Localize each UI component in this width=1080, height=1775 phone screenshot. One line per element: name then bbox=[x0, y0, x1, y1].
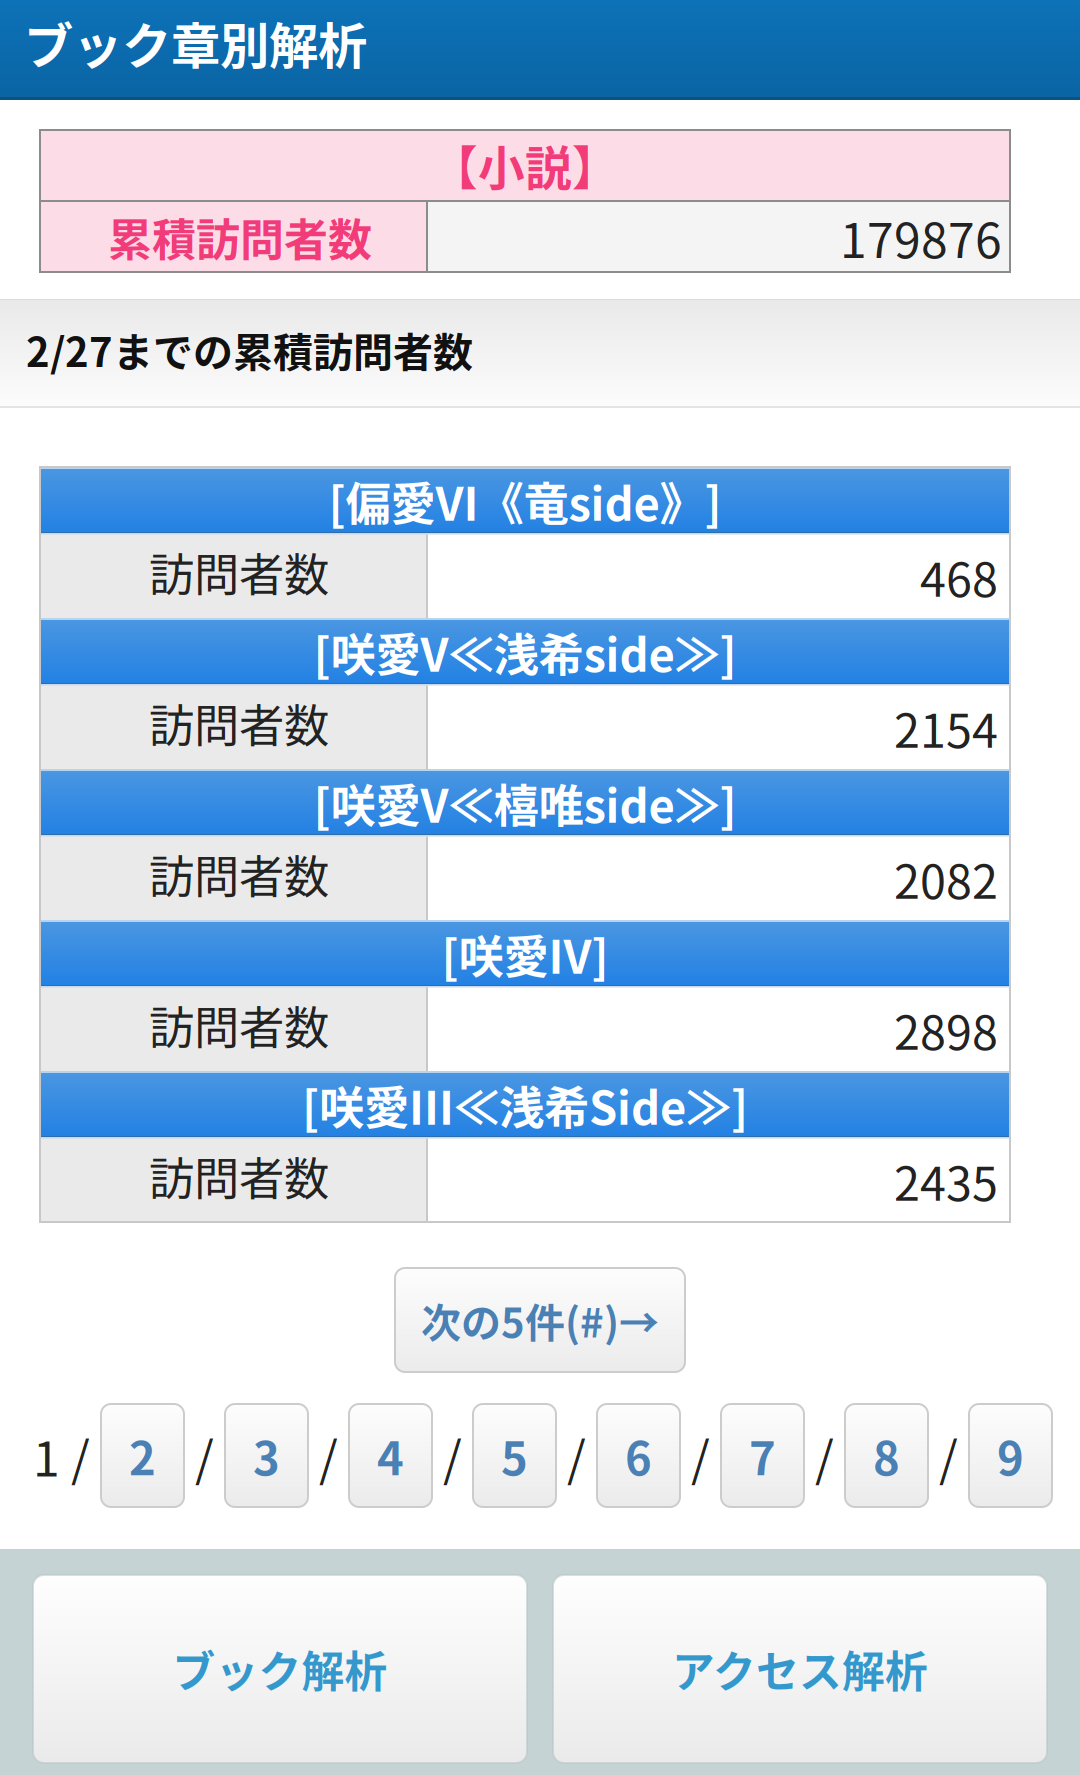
staticText: 8 bbox=[873, 1423, 900, 1488]
button[interactable]: アクセス解析 bbox=[553, 1575, 1047, 1763]
button[interactable]: 4 bbox=[349, 1404, 432, 1507]
button[interactable]: 6 bbox=[597, 1404, 680, 1507]
staticText: 5 bbox=[501, 1423, 528, 1488]
staticText: 1 bbox=[33, 1421, 60, 1490]
staticText: アクセス解析 bbox=[672, 1638, 928, 1700]
button[interactable]: 次の5件(#)→ bbox=[395, 1268, 685, 1372]
staticText: [咲愛V≪浅希side≫] bbox=[313, 619, 736, 685]
staticText: ブック章別解析 bbox=[24, 7, 367, 78]
button[interactable]: 2 bbox=[101, 1404, 184, 1507]
staticText: 訪問者数 bbox=[149, 539, 329, 605]
staticText: / bbox=[319, 1421, 338, 1490]
staticText: [咲愛IV] bbox=[441, 921, 608, 987]
staticText: 179876 bbox=[840, 202, 1002, 272]
staticText: 3 bbox=[253, 1423, 280, 1488]
staticText: 累積訪問者数 bbox=[108, 205, 372, 269]
staticText: 468 bbox=[920, 543, 998, 610]
staticText: 2 bbox=[129, 1423, 156, 1488]
button[interactable]: 5 bbox=[473, 1404, 556, 1507]
staticText: / bbox=[443, 1421, 462, 1490]
staticText: 6 bbox=[625, 1423, 652, 1488]
staticText: 2154 bbox=[894, 694, 998, 761]
staticText: 2435 bbox=[894, 1147, 998, 1214]
staticText: 2/27までの累積訪問者数 bbox=[26, 320, 473, 378]
staticText: / bbox=[815, 1421, 834, 1490]
staticText: / bbox=[71, 1421, 90, 1490]
staticText: 訪問者数 bbox=[149, 992, 329, 1058]
button[interactable]: 7 bbox=[721, 1404, 804, 1507]
staticText: / bbox=[691, 1421, 710, 1490]
staticText: / bbox=[195, 1421, 214, 1490]
staticText: / bbox=[939, 1421, 958, 1490]
staticText: 訪問者数 bbox=[149, 690, 329, 756]
staticText: 2898 bbox=[894, 996, 998, 1063]
staticText: / bbox=[567, 1421, 586, 1490]
staticText: 2082 bbox=[894, 845, 998, 912]
staticText: 訪問者数 bbox=[149, 841, 329, 907]
staticText: [偏愛VI《竜side》] bbox=[328, 468, 721, 534]
staticText: 4 bbox=[377, 1423, 404, 1488]
button[interactable]: 9 bbox=[969, 1404, 1052, 1507]
staticText: [咲愛V≪橲唯side≫] bbox=[313, 770, 736, 836]
staticText: 9 bbox=[997, 1423, 1024, 1488]
staticText: 7 bbox=[749, 1423, 776, 1488]
button[interactable]: 3 bbox=[225, 1404, 308, 1507]
button[interactable]: ブック解析 bbox=[33, 1575, 527, 1763]
button[interactable]: 8 bbox=[845, 1404, 928, 1507]
staticText: ブック解析 bbox=[172, 1638, 387, 1700]
staticText: 【小説】 bbox=[431, 131, 619, 199]
staticText: [咲愛III≪浅希Side≫] bbox=[302, 1072, 748, 1138]
staticText: 次の5件(#)→ bbox=[421, 1291, 659, 1349]
staticText: 訪問者数 bbox=[149, 1143, 329, 1209]
